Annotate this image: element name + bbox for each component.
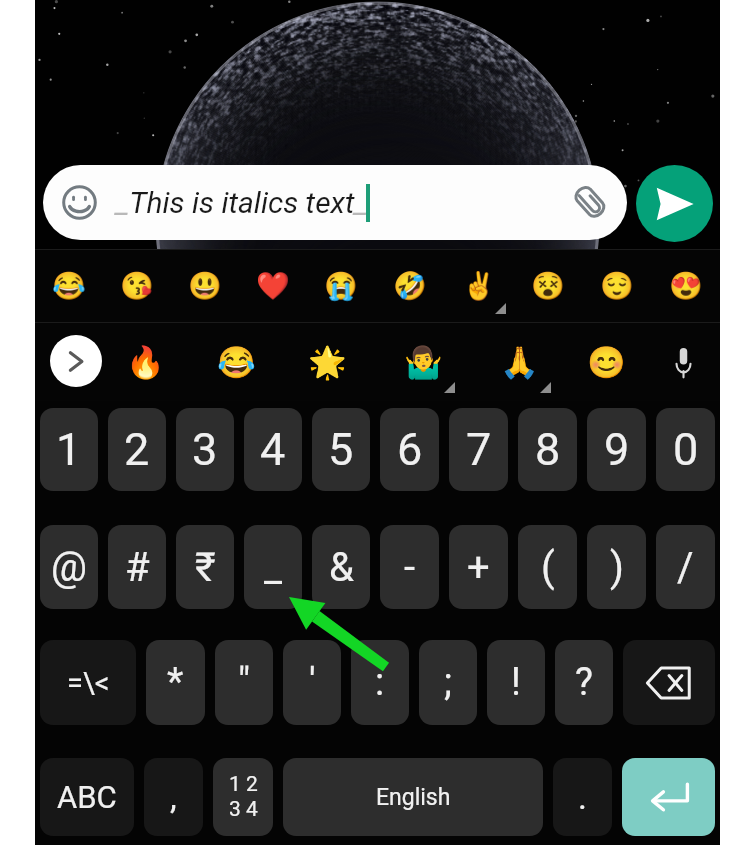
staticText: ❤️	[256, 270, 290, 302]
staticText: )	[610, 544, 624, 591]
button[interactable]: 😂	[203, 323, 269, 401]
button[interactable]: &	[312, 525, 370, 609]
staticText: *	[167, 660, 184, 705]
staticText: ABC	[57, 779, 117, 815]
button[interactable]: Attach	[571, 183, 609, 221]
staticText: 2	[124, 423, 150, 476]
button[interactable]: @	[40, 525, 98, 609]
button[interactable]: 3	[176, 408, 234, 491]
button[interactable]: More emoji	[50, 335, 102, 387]
staticText: :	[375, 660, 385, 705]
staticText: 3 4	[229, 797, 258, 822]
staticText: -	[404, 544, 416, 591]
staticText: English	[376, 784, 451, 811]
button[interactable]: Enter	[622, 758, 715, 836]
button[interactable]: =\<	[40, 640, 136, 725]
button[interactable]: 😵	[513, 249, 582, 323]
staticText: 😂	[52, 270, 86, 302]
button[interactable]: ABC	[40, 758, 134, 836]
button[interactable]: 😌	[582, 249, 651, 323]
staticText: ?	[575, 660, 593, 705]
button[interactable]: ₹	[176, 525, 234, 609]
staticText: ;	[444, 660, 453, 705]
button[interactable]: 🤣	[375, 249, 444, 323]
staticText: /	[677, 544, 694, 591]
staticText: _	[264, 544, 283, 591]
button[interactable]: 😭	[307, 249, 375, 323]
button[interactable]: 🤷‍♂️	[390, 323, 456, 401]
button[interactable]: 1	[40, 408, 98, 491]
button[interactable]: .	[553, 758, 612, 836]
button[interactable]: 9	[587, 408, 646, 491]
staticText: 🙏	[500, 344, 539, 380]
button[interactable]: (	[518, 525, 577, 609]
button[interactable]: 5	[312, 408, 370, 491]
button[interactable]: 🔥	[112, 323, 178, 401]
staticText: !	[511, 660, 521, 705]
button[interactable]: ,	[144, 758, 203, 836]
button[interactable]: _	[244, 525, 302, 609]
staticText: ₹	[195, 544, 216, 591]
staticText: 7	[466, 423, 492, 476]
staticText: (	[541, 544, 555, 591]
staticText: 😘	[120, 270, 154, 302]
staticText: 1 2	[229, 772, 258, 797]
staticText: ,	[170, 777, 177, 817]
button[interactable]: Emoji	[43, 165, 627, 240]
staticText: 🌟	[308, 344, 347, 380]
staticText: 🤷‍♂️	[404, 344, 443, 380]
button[interactable]: 2	[108, 408, 166, 491]
button[interactable]: Send	[636, 165, 713, 242]
button[interactable]: Backspace	[623, 640, 715, 725]
staticText: "	[238, 660, 251, 705]
staticText: =\<	[67, 666, 110, 700]
button[interactable]: Voice input	[653, 323, 713, 401]
button[interactable]: English	[283, 758, 543, 836]
button[interactable]: :	[351, 640, 409, 725]
staticText: 8	[535, 423, 561, 476]
staticText: ✌️	[462, 270, 496, 302]
button[interactable]: +	[449, 525, 508, 609]
button[interactable]: ?	[555, 640, 613, 725]
staticText: 4	[260, 423, 286, 476]
staticText: 9	[604, 423, 630, 476]
staticText: 😍	[669, 270, 703, 302]
staticText: 5	[328, 423, 354, 476]
button[interactable]: "	[215, 640, 273, 725]
button[interactable]: 😃	[171, 249, 239, 323]
staticText: 0	[673, 423, 699, 476]
button[interactable]: 😘	[103, 249, 171, 323]
button[interactable]: 8	[518, 408, 577, 491]
button[interactable]: )	[587, 525, 646, 609]
button[interactable]: 6	[380, 408, 439, 491]
button[interactable]: 4	[244, 408, 302, 491]
staticText: 1	[56, 423, 82, 476]
staticText: 😵	[531, 270, 565, 302]
button[interactable]: 🙏	[486, 323, 552, 401]
button[interactable]: ✌️	[444, 249, 513, 323]
button[interactable]: -	[380, 525, 439, 609]
button[interactable]: 😊	[573, 323, 639, 401]
button[interactable]: 7	[449, 408, 508, 491]
button[interactable]: 🌟	[294, 323, 360, 401]
staticText: 😌	[600, 270, 634, 302]
button[interactable]: '	[283, 640, 341, 725]
staticText: .	[578, 777, 587, 817]
staticText: @	[51, 544, 87, 591]
staticText: 😃	[188, 270, 222, 302]
staticText: _This is italics text_	[116, 185, 368, 220]
button[interactable]: 😍	[651, 249, 720, 323]
button[interactable]: #	[108, 525, 166, 609]
button[interactable]: *	[146, 640, 205, 725]
staticText: 😊	[587, 344, 626, 380]
button[interactable]: ;	[419, 640, 477, 725]
button[interactable]: Emoji	[62, 185, 97, 220]
button[interactable]: /	[656, 525, 715, 609]
button[interactable]: 0	[656, 408, 715, 491]
button[interactable]: ❤️	[239, 249, 307, 323]
button[interactable]: 1 2	[213, 758, 273, 836]
staticText: 🤣	[393, 270, 427, 302]
button[interactable]: 😂	[35, 249, 103, 323]
button[interactable]: !	[487, 640, 545, 725]
staticText: '	[309, 660, 316, 705]
